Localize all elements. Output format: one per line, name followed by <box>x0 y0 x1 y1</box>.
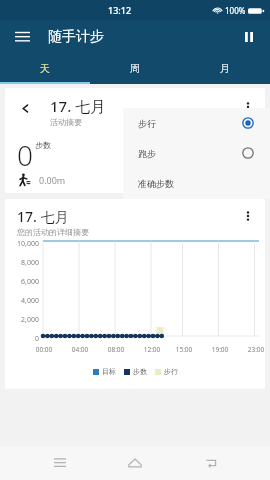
staticText: 您的活动的详细摘要 <box>17 227 89 237</box>
button[interactable]: Previous day <box>5 88 265 193</box>
button[interactable]: More options <box>237 205 259 227</box>
button[interactable]: 17. 七月 <box>5 199 265 389</box>
staticText: 00:00 <box>32 345 56 354</box>
button[interactable]: Pause <box>236 24 262 50</box>
button[interactable]: 天 <box>0 54 90 82</box>
button[interactable]: More options <box>237 96 259 118</box>
button[interactable]: 月 <box>180 54 270 82</box>
staticText: 15:00 <box>172 345 196 354</box>
button[interactable]: Menu <box>8 23 36 51</box>
button[interactable]: 周 <box>90 54 180 82</box>
staticText: 目标 <box>102 367 116 376</box>
staticText: 0 <box>5 334 39 344</box>
staticText: 随手计步 <box>48 28 104 46</box>
staticText: 天 <box>40 62 50 75</box>
staticText: 17. 七月 <box>17 207 69 226</box>
staticText: 跑步 <box>138 148 156 159</box>
staticText: 17. 七月 <box>50 96 106 116</box>
button[interactable]: 跑步 <box>123 138 270 168</box>
staticText: 步数 <box>133 367 147 376</box>
staticText: 活动摘要 <box>50 117 82 127</box>
staticText: 月 <box>220 62 230 75</box>
staticText: 8,000 <box>5 258 39 268</box>
staticText: 0 <box>17 136 33 174</box>
staticText: 步数 <box>35 140 51 150</box>
staticText: 准确步数 <box>138 178 174 189</box>
button[interactable]: 准确步数 <box>123 168 270 198</box>
staticText: 6,000 <box>5 277 39 287</box>
staticText: 4,000 <box>5 296 39 306</box>
staticText: 04:00 <box>68 345 92 354</box>
staticText: 13:12 <box>108 4 132 16</box>
button[interactable]: Previous day <box>17 100 33 116</box>
button[interactable]: Recents <box>44 447 76 479</box>
staticText: 100% <box>225 5 246 16</box>
staticText: 周 <box>130 62 140 75</box>
staticText: 23:00 <box>244 345 265 354</box>
button[interactable]: 步行 <box>123 108 270 138</box>
staticText: 19:00 <box>208 345 232 354</box>
staticText: 10,000 <box>5 239 39 249</box>
button[interactable]: Home <box>119 447 151 479</box>
staticText: 12:00 <box>140 345 164 354</box>
button[interactable]: Back <box>195 447 227 479</box>
staticText: 步行 <box>138 118 156 129</box>
staticText: 08:00 <box>104 345 128 354</box>
staticText: 2,000 <box>5 315 39 325</box>
staticText: 0.00m <box>39 174 66 186</box>
staticText: 步行 <box>164 367 178 376</box>
